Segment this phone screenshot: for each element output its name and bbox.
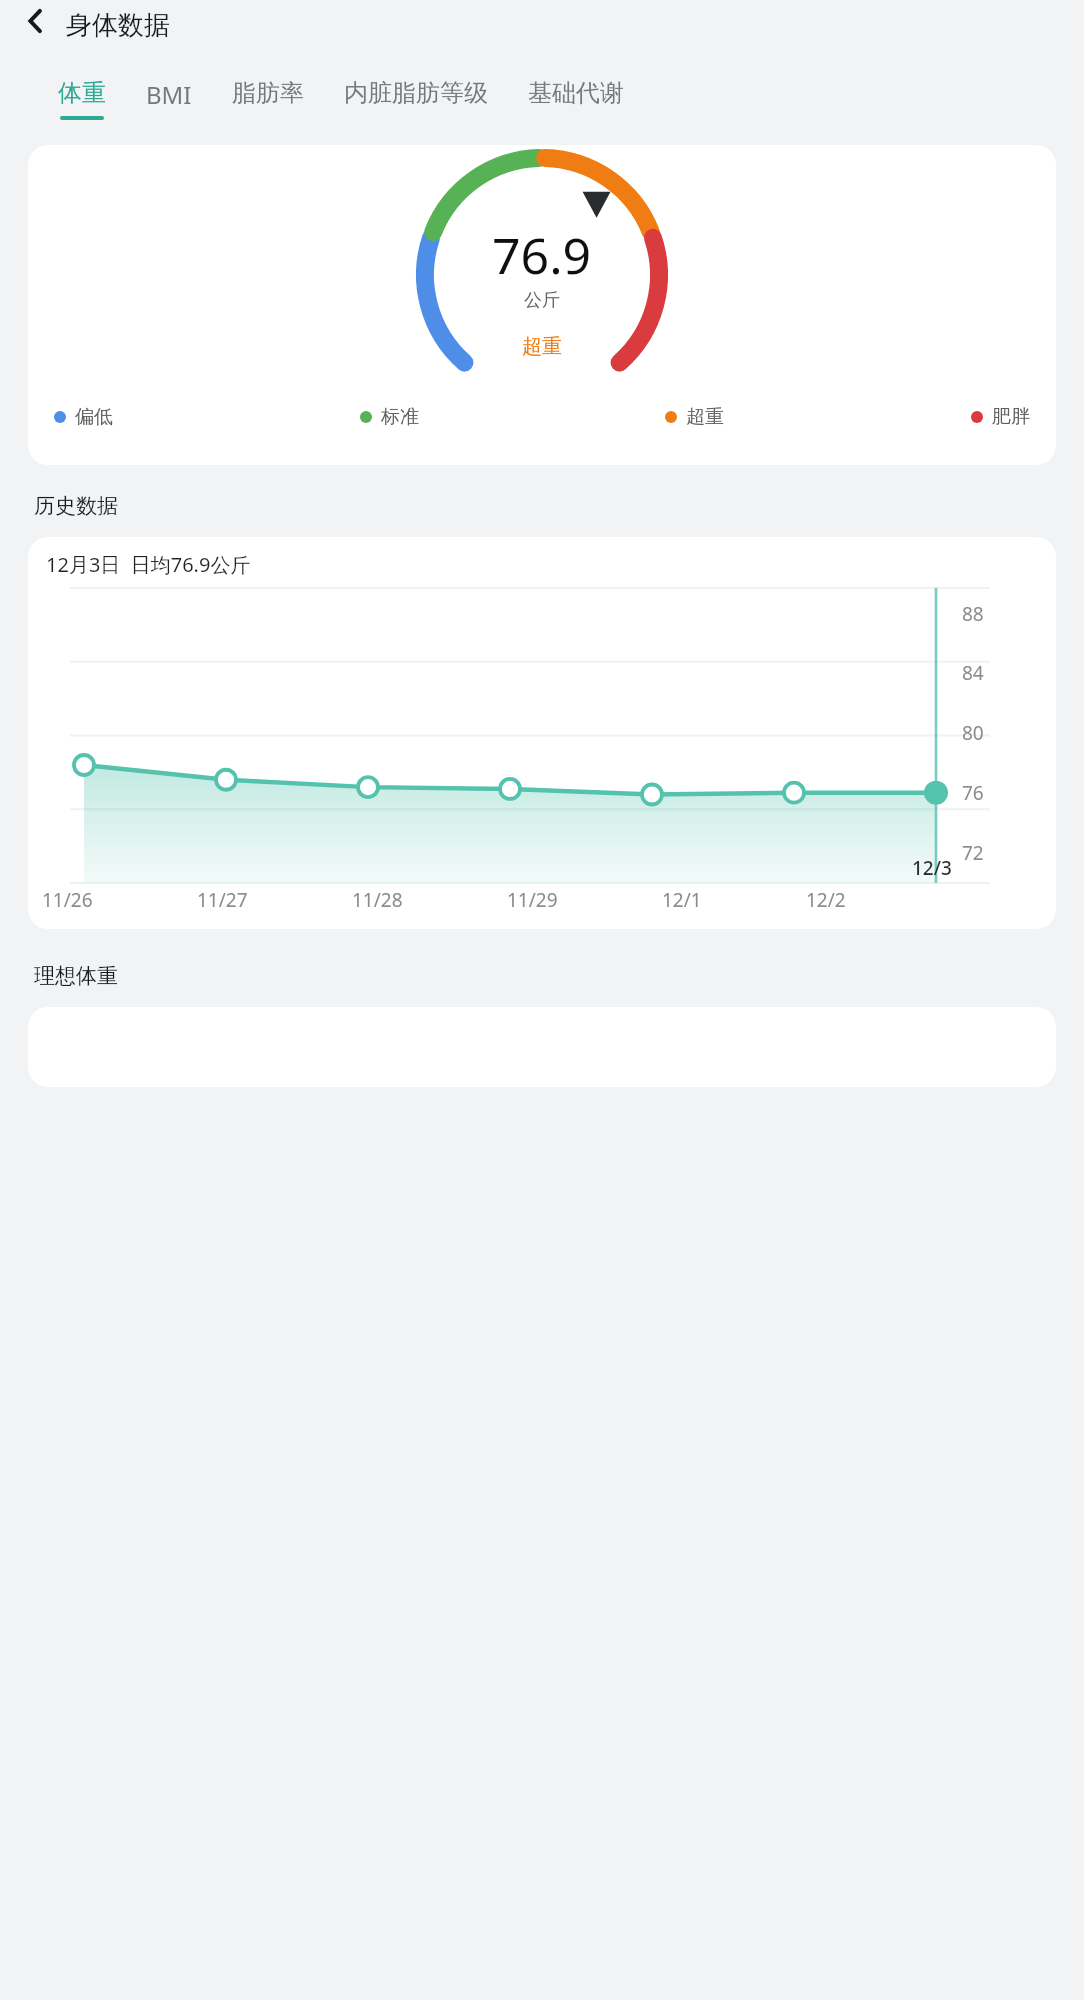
staticText: 超重 xyxy=(522,334,562,359)
button[interactable]: 76.9 xyxy=(28,145,1056,465)
button[interactable]: BMI xyxy=(146,78,192,123)
button[interactable]: 脂肪率 xyxy=(232,78,304,120)
button[interactable]: 内脏脂肪等级 xyxy=(344,78,488,120)
staticText: 历史数据 xyxy=(34,493,118,519)
staticText: 11/27 xyxy=(197,887,248,913)
staticText: 12/2 xyxy=(806,887,846,913)
staticText: 身体数据 xyxy=(66,9,170,42)
staticText: 80 xyxy=(962,720,984,746)
staticText: 76 xyxy=(962,780,984,806)
staticText: 偏低 xyxy=(75,405,113,429)
button[interactable]: 偏低 xyxy=(54,405,113,429)
staticText: 体重 xyxy=(58,78,106,108)
staticText: 超重 xyxy=(686,405,724,429)
staticText: 理想体重 xyxy=(34,963,118,989)
staticText: 84 xyxy=(962,660,984,686)
staticText: 11/29 xyxy=(507,887,558,913)
staticText: 12/1 xyxy=(662,887,702,913)
staticText: 11/26 xyxy=(42,887,93,913)
staticText: 公斤 xyxy=(524,289,560,312)
button[interactable]: 基础代谢 xyxy=(528,78,624,120)
button[interactable]: 肥胖 xyxy=(971,405,1030,429)
staticText: 76.9 xyxy=(492,221,592,289)
staticText: 12/3 xyxy=(912,855,952,881)
button[interactable]: 标准 xyxy=(360,405,419,429)
staticText: 12月3日 日均76.9公斤 xyxy=(46,551,251,578)
staticText: 88 xyxy=(962,601,984,627)
staticText: 标准 xyxy=(381,405,419,429)
button[interactable]: 超重 xyxy=(665,405,724,429)
button[interactable]: 体重 xyxy=(58,78,106,120)
staticText: 72 xyxy=(962,840,984,866)
button[interactable]: Back xyxy=(12,0,60,42)
button[interactable]: 12月3日 日均76.9公斤 xyxy=(28,537,1056,929)
staticText: 肥胖 xyxy=(992,405,1030,429)
staticText: BMI xyxy=(146,78,192,111)
staticText: 内脏脂肪等级 xyxy=(344,78,488,108)
staticText: 11/28 xyxy=(352,887,403,913)
staticText: 基础代谢 xyxy=(528,78,624,108)
staticText: 脂肪率 xyxy=(232,78,304,108)
